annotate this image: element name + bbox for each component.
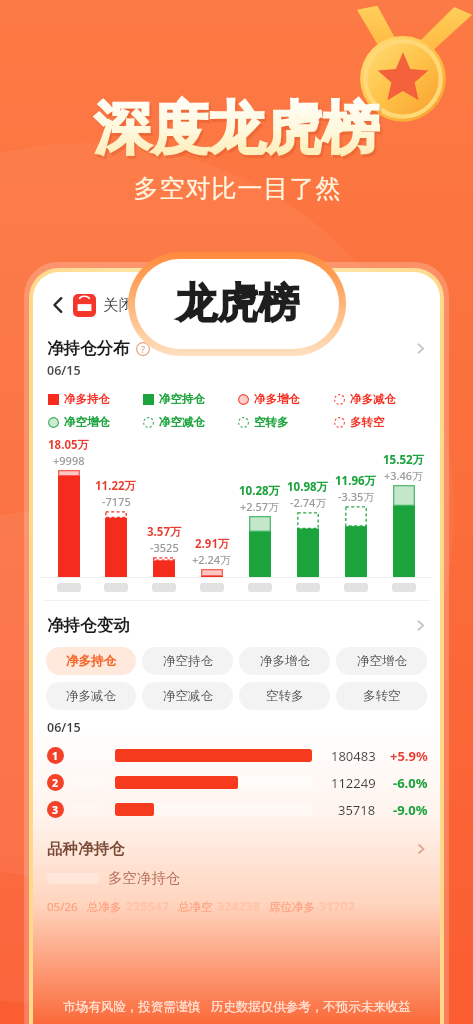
staticText: 1 <box>52 749 59 763</box>
button[interactable]: 品种净持仓 <box>47 839 428 859</box>
staticText: -3.35万 <box>338 489 375 504</box>
button[interactable]: 净空增仓 <box>336 647 427 675</box>
staticText: 2.91万 <box>195 536 230 552</box>
staticText: 净空增仓 <box>64 415 110 429</box>
staticText: 净空持仓 <box>163 653 213 669</box>
button[interactable]: 净多增仓 <box>239 647 330 675</box>
staticText: 11.96万 <box>335 473 377 489</box>
button[interactable]: 空转多 <box>239 682 330 710</box>
staticText: 11.22万 <box>95 478 137 494</box>
button[interactable]: 1 <box>47 742 428 769</box>
button[interactable]: 净空减仓 <box>142 682 233 710</box>
staticText: 深度龙虎榜 <box>96 96 381 168</box>
staticText: 净多增仓 <box>260 653 310 669</box>
button[interactable]: 净多减仓 <box>46 682 136 710</box>
staticText: 225547 <box>126 898 169 915</box>
staticText: 06/15 <box>47 362 81 379</box>
staticText: 05/26 <box>47 899 78 915</box>
staticText: +2.24万 <box>192 552 232 567</box>
button[interactable]: 多转空 <box>336 682 427 710</box>
staticText: 品种净持仓 <box>47 839 125 859</box>
staticText: 多转空 <box>350 415 385 429</box>
staticText: 多空净持仓 <box>108 869 181 887</box>
staticText: -7175 <box>102 494 131 509</box>
staticText: 净持仓分布 <box>47 338 130 359</box>
staticText: 净多减仓 <box>66 688 116 704</box>
button[interactable]: 龙虎榜 <box>135 259 339 349</box>
button[interactable]: 净持仓分布 <box>47 338 428 359</box>
staticText: 龙虎榜 <box>176 278 299 330</box>
button[interactable]: 净多持仓 <box>46 647 136 675</box>
staticText: +2.57万 <box>240 499 280 514</box>
staticText: 总净空 <box>178 900 213 914</box>
staticText: 多转空 <box>363 688 401 704</box>
staticText: +3.46万 <box>384 468 424 483</box>
staticText: 市场有风险，投资需谨慎 历史数据仅供参考，不预示未来收益 <box>63 998 411 1015</box>
staticText: 180483 <box>331 747 376 765</box>
staticText: 10.98万 <box>287 479 329 495</box>
button[interactable]: 关闭 <box>103 295 134 315</box>
button[interactable]: 3 <box>47 796 428 823</box>
button[interactable]: 应用图标 <box>73 294 96 317</box>
staticText: -6.0% <box>393 774 428 792</box>
staticText: 06/15 <box>47 719 81 736</box>
staticText: 324238 <box>217 898 260 915</box>
staticText: 深度龙虎榜 <box>94 93 379 165</box>
staticText: 净多减仓 <box>350 392 396 406</box>
staticText: 18.05万 <box>48 437 90 453</box>
staticText: 净空减仓 <box>163 688 213 704</box>
staticText: 多空对比一目了然 <box>133 173 341 204</box>
staticText: -9.0% <box>393 801 428 819</box>
button[interactable]: 返回 <box>45 292 71 318</box>
staticText: 112249 <box>331 774 376 792</box>
staticText: 净空持仓 <box>159 392 205 406</box>
staticText: 3 <box>52 803 59 817</box>
staticText: 空转多 <box>266 688 304 704</box>
staticText: 净空减仓 <box>159 415 205 429</box>
staticText: +9998 <box>53 453 85 468</box>
staticText: 空转多 <box>254 415 289 429</box>
staticText: 净多持仓 <box>66 653 116 669</box>
staticText: 净空增仓 <box>357 653 407 669</box>
staticText: 15.52万 <box>383 452 425 468</box>
button[interactable]: 净持仓变动 <box>47 615 428 636</box>
staticText: 10.28万 <box>239 483 281 499</box>
staticText: 35718 <box>338 801 376 819</box>
staticText: 31702 <box>319 898 355 915</box>
staticText: ? <box>141 343 145 355</box>
staticText: 3.57万 <box>147 524 182 540</box>
staticText: -2.74万 <box>290 495 327 510</box>
staticText: 净多增仓 <box>254 392 300 406</box>
button[interactable]: 净空持仓 <box>142 647 233 675</box>
staticText: -3525 <box>150 540 179 555</box>
staticText: 2 <box>52 776 59 790</box>
staticText: +5.9% <box>390 747 428 765</box>
staticText: 净持仓变动 <box>47 615 130 636</box>
staticText: 席位净多 <box>269 900 315 914</box>
button[interactable]: 2 <box>47 769 428 796</box>
staticText: 总净多 <box>87 900 122 914</box>
staticText: 净多持仓 <box>64 392 110 406</box>
